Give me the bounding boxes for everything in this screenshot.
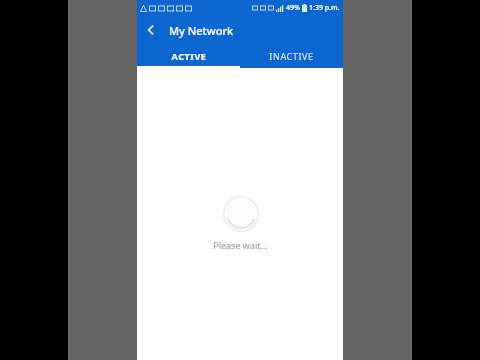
staticText: ACTIVE [171, 50, 207, 62]
button[interactable]: INACTIVE [240, 44, 343, 68]
staticText: 1:39 p.m. [309, 3, 340, 13]
staticText: 49% [286, 3, 300, 13]
button[interactable]: Back [137, 16, 165, 44]
staticText: Please wait... [213, 239, 268, 251]
staticText: INACTIVE [269, 50, 314, 62]
staticText: My Network [169, 23, 234, 38]
button[interactable]: ACTIVE [137, 44, 240, 68]
